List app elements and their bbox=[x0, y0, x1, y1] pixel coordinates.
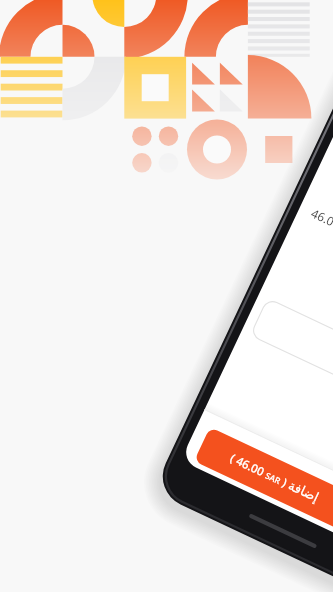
button[interactable]: Add 46.00 SAR bbox=[196, 428, 333, 490]
